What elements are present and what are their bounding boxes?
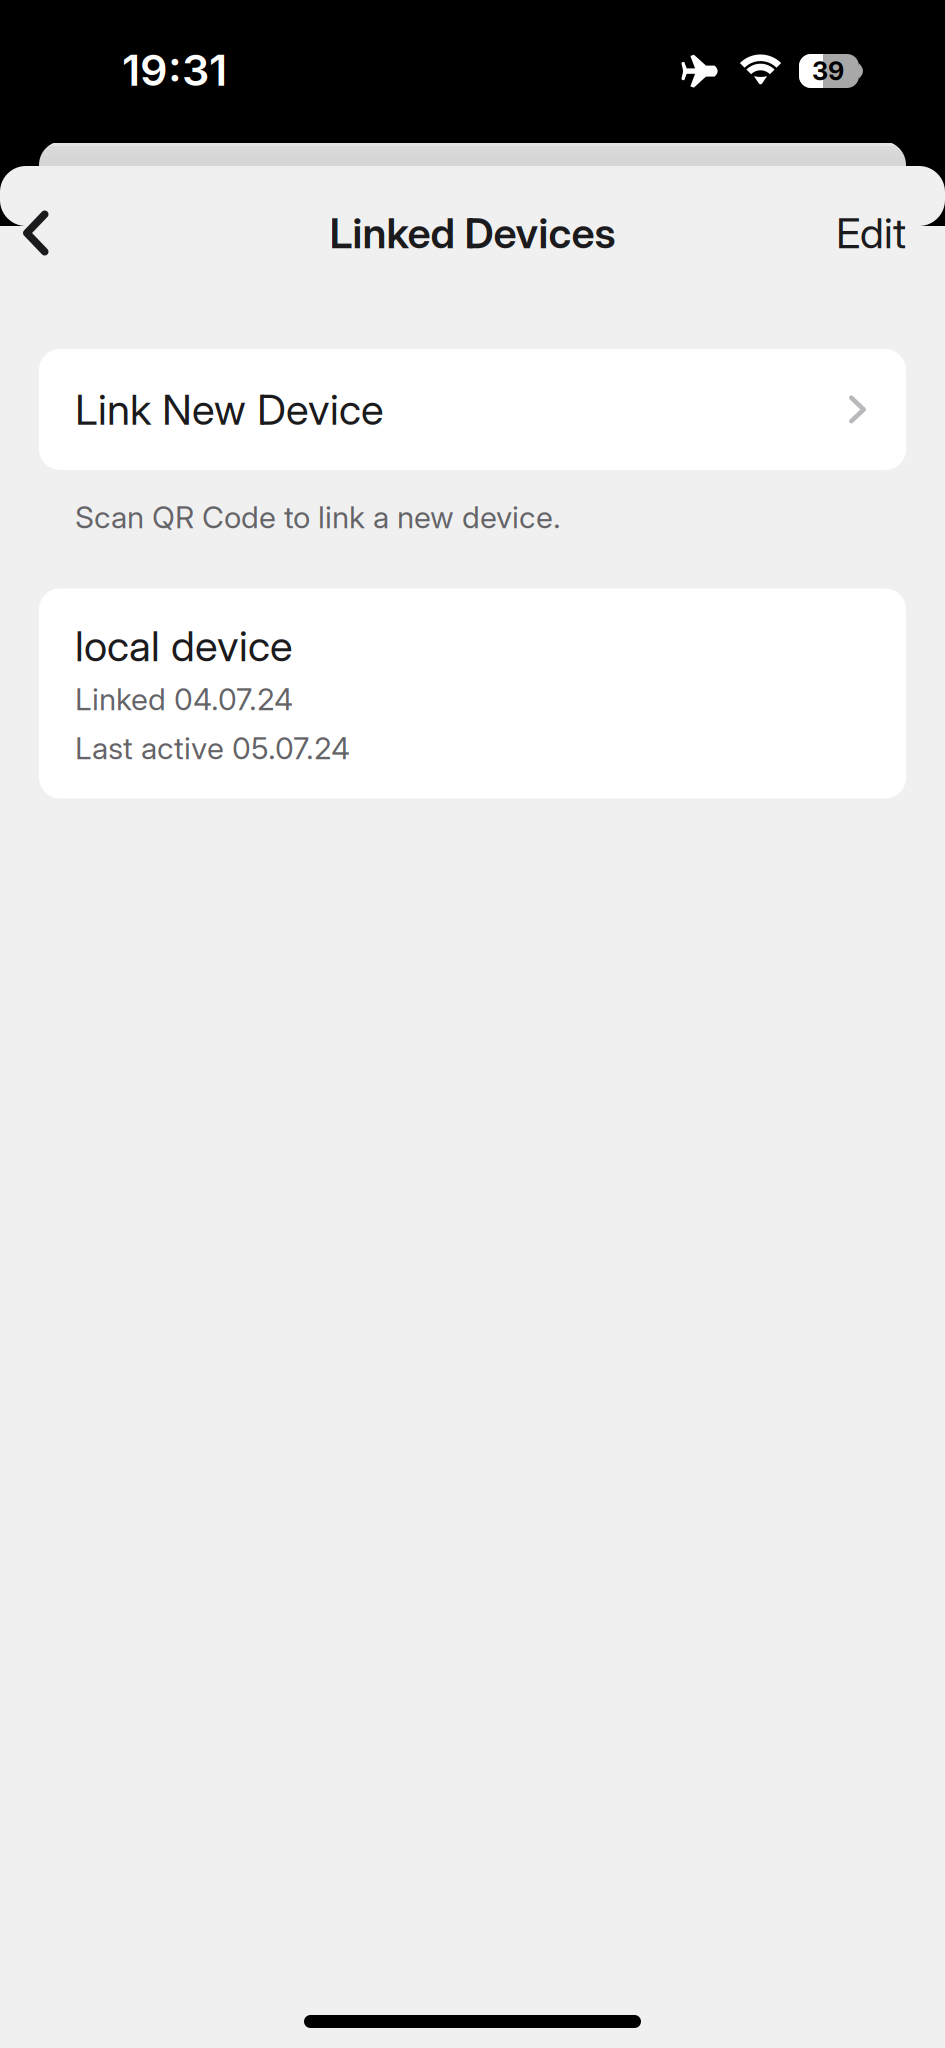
staticText: Edit <box>836 208 906 258</box>
staticText: Linked 04.07.24 <box>75 681 293 717</box>
staticText: Last active 05.07.24 <box>75 730 350 766</box>
button[interactable]: Edit <box>804 190 945 276</box>
staticText: Link New Device <box>75 384 384 435</box>
button[interactable]: Back <box>0 190 80 276</box>
staticText: Linked Devices <box>329 208 615 258</box>
staticText: local device <box>75 621 293 671</box>
staticText: Scan QR Code to link a new device. <box>75 499 561 535</box>
button[interactable]: local device <box>39 588 906 798</box>
staticText: 39 <box>812 56 844 86</box>
button[interactable]: Link New Device <box>39 349 906 470</box>
staticText: 19:31 <box>122 44 227 96</box>
